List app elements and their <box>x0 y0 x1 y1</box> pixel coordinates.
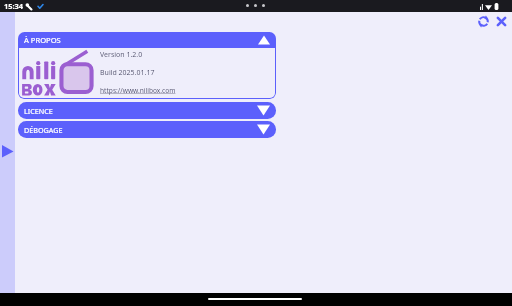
button[interactable]: Close <box>495 15 508 28</box>
staticText: DÉBOGAGE <box>24 125 63 135</box>
staticText: LICENCE <box>24 106 53 116</box>
button[interactable]: DÉBOGAGE <box>18 121 276 138</box>
staticText: À PROPOS <box>24 35 61 45</box>
button[interactable]: https://www.nilibox.com <box>100 86 176 95</box>
button[interactable]: Refresh <box>477 15 490 28</box>
staticText: Build 2025.01.17 <box>100 68 155 78</box>
staticText: 15:34 <box>4 1 23 11</box>
staticText: Version 1.2.0 <box>100 50 143 60</box>
button[interactable]: LICENCE <box>18 102 276 119</box>
button[interactable]: Expand panel <box>0 12 15 293</box>
button[interactable]: À PROPOS <box>18 32 276 47</box>
